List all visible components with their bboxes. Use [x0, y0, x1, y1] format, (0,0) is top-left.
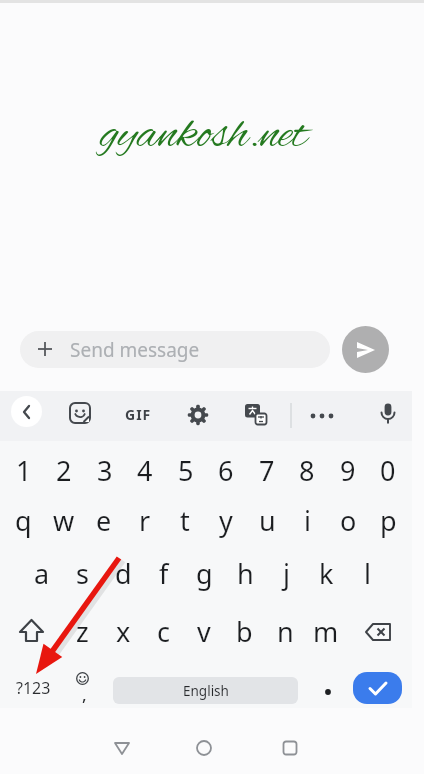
button[interactable]: , [66, 668, 100, 708]
staticText: t [180, 502, 190, 539]
button[interactable] [100, 734, 144, 762]
staticText: u [259, 502, 276, 539]
staticText: English [183, 682, 229, 700]
button[interactable]: p [368, 500, 408, 540]
staticText: b [236, 613, 253, 650]
button[interactable] [376, 402, 400, 426]
staticText: o [340, 502, 357, 539]
staticText: l [364, 555, 371, 592]
button[interactable]: j [266, 553, 306, 593]
button[interactable]: w [44, 500, 84, 540]
staticText: 1 [16, 452, 32, 489]
button[interactable]: q [3, 500, 43, 540]
staticText: f [159, 555, 169, 592]
button[interactable]: 5 [166, 450, 206, 490]
button[interactable] [17, 618, 46, 645]
button[interactable]: 2 [44, 450, 84, 490]
button[interactable]: 3 [85, 450, 125, 490]
staticText: Send message [70, 337, 200, 363]
button[interactable]: 7 [247, 450, 287, 490]
button[interactable]: English [113, 677, 298, 704]
button[interactable] [313, 672, 343, 708]
button[interactable]: ?123 [8, 668, 58, 708]
button[interactable]: 0 [368, 450, 408, 490]
staticText: w [53, 502, 75, 539]
staticText: 5 [178, 452, 194, 489]
staticText: p [380, 502, 397, 539]
button[interactable]: 1 [4, 450, 44, 490]
button[interactable]: 8 [287, 450, 327, 490]
button[interactable]: l [347, 553, 387, 593]
staticText: d [115, 555, 132, 592]
staticText: i [304, 502, 311, 539]
button[interactable]: y [206, 500, 246, 540]
staticText: e [96, 502, 112, 539]
staticText: k [319, 555, 334, 592]
button[interactable]: e [84, 500, 124, 540]
staticText: h [237, 555, 254, 592]
staticText: 8 [299, 452, 315, 489]
button[interactable]: r [125, 500, 165, 540]
button[interactable]: u [247, 500, 287, 540]
staticText: v [197, 613, 211, 650]
staticText: a [34, 555, 50, 592]
staticText: 4 [137, 452, 153, 489]
button[interactable] [364, 622, 392, 642]
staticText: s [76, 555, 89, 592]
button[interactable]: t [165, 500, 205, 540]
button[interactable]: GIF [118, 402, 158, 426]
button[interactable]: 6 [206, 450, 246, 490]
staticText: c [157, 613, 170, 650]
staticText: r [139, 502, 151, 539]
button[interactable] [11, 396, 42, 427]
button[interactable] [268, 734, 312, 762]
button[interactable] [186, 403, 210, 427]
button[interactable]: k [306, 553, 346, 593]
staticText: gyankosh.net [100, 105, 308, 168]
button[interactable]: f [144, 553, 184, 593]
staticText: y [219, 502, 233, 539]
staticText: j [283, 555, 290, 592]
staticText: g [196, 555, 213, 592]
button[interactable]: 9 [328, 450, 368, 490]
button[interactable] [69, 402, 91, 424]
staticText: 3 [97, 452, 113, 489]
staticText: 0 [380, 452, 396, 489]
button[interactable]: h [225, 553, 265, 593]
button[interactable] [353, 672, 402, 704]
staticText: ?123 [16, 677, 51, 699]
staticText: 7 [259, 452, 275, 489]
button[interactable]: c [143, 611, 183, 651]
staticText: x [116, 613, 131, 650]
button[interactable]: 4 [125, 450, 165, 490]
staticText: , [82, 683, 87, 706]
staticText: GIF [125, 405, 152, 424]
button[interactable]: v [184, 611, 224, 651]
staticText: q [15, 502, 32, 539]
button[interactable]: a [22, 553, 62, 593]
staticText: z [76, 613, 89, 650]
button[interactable] [245, 404, 268, 427]
button[interactable]: n [265, 611, 305, 651]
button[interactable] [20, 331, 330, 368]
button[interactable]: d [103, 553, 143, 593]
button[interactable]: z [62, 611, 102, 651]
button[interactable]: i [287, 500, 327, 540]
button[interactable]: s [62, 553, 102, 593]
button[interactable]: m [306, 611, 346, 651]
staticText: m [313, 613, 339, 650]
button[interactable]: g [184, 553, 224, 593]
button[interactable] [342, 326, 389, 373]
staticText: 9 [340, 452, 356, 489]
button[interactable] [306, 404, 338, 428]
staticText: 6 [218, 452, 234, 489]
button[interactable]: x [103, 611, 143, 651]
staticText: 2 [56, 452, 72, 489]
staticText: n [277, 613, 294, 650]
button[interactable] [182, 734, 226, 762]
button[interactable]: o [328, 500, 368, 540]
button[interactable]: b [224, 611, 264, 651]
